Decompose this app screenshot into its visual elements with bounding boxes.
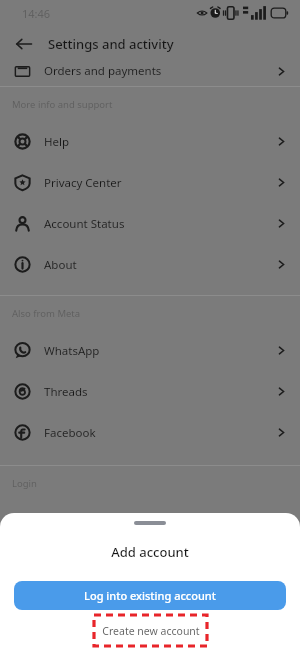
staticText: Help xyxy=(44,134,275,150)
staticText: About xyxy=(44,257,275,273)
staticText: Also from Meta xyxy=(12,307,81,320)
button[interactable]: Back xyxy=(0,26,48,62)
staticText: Log into existing account xyxy=(84,588,216,603)
staticText: Login xyxy=(12,477,37,490)
staticText: Create new account xyxy=(102,624,200,638)
staticText: Orders and payments xyxy=(44,63,275,79)
button[interactable]: Help xyxy=(0,121,300,162)
button[interactable]: Orders and payments xyxy=(0,62,300,80)
staticText: Add account xyxy=(111,543,189,561)
button[interactable]: About xyxy=(0,244,300,285)
button[interactable]: WhatsApp xyxy=(0,330,300,371)
button[interactable]: Log into existing account xyxy=(14,581,286,610)
staticText: Account Status xyxy=(44,216,275,232)
staticText: 14:46 xyxy=(22,6,51,21)
staticText: WhatsApp xyxy=(44,343,275,359)
staticText: Facebook xyxy=(44,425,275,441)
button[interactable]: Threads xyxy=(0,371,300,412)
button[interactable]: Facebook xyxy=(0,412,300,453)
staticText: Settings and activity xyxy=(48,35,174,53)
button[interactable]: Privacy Center xyxy=(0,162,300,203)
staticText: More info and support xyxy=(12,98,113,111)
button[interactable]: Create new account xyxy=(94,615,207,646)
staticText: Privacy Center xyxy=(44,175,275,191)
staticText: Threads xyxy=(44,384,275,400)
button[interactable]: Account Status xyxy=(0,203,300,244)
